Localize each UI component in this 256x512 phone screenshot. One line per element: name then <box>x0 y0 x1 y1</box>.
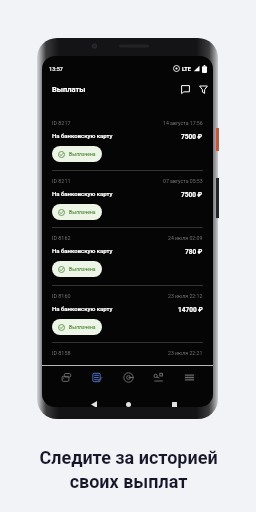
button[interactable]: Назад <box>83 393 105 407</box>
staticText: Выплачена <box>69 151 96 157</box>
button[interactable]: ID 8217 <box>42 113 213 171</box>
staticText: ID 8217 <box>52 120 71 126</box>
staticText: 23 июля 22:21 <box>168 350 203 356</box>
staticText: Выплачена <box>69 324 96 330</box>
staticText: Выплачена <box>69 209 96 215</box>
staticText: На банковскую карту <box>52 132 113 139</box>
button[interactable]: Карты <box>55 366 77 388</box>
staticText: Выплаты <box>52 85 86 94</box>
button[interactable]: ID 8158 <box>42 343 213 401</box>
staticText: ID 8158 <box>52 350 71 356</box>
staticText: На банковскую карту <box>52 190 113 197</box>
staticText: Следите за историей своих выплат <box>39 447 218 493</box>
staticText: 23 июля 22:12 <box>168 293 203 299</box>
button[interactable]: Меню <box>178 366 200 388</box>
button[interactable]: Статистика <box>147 366 169 388</box>
staticText: 7500 ₽ <box>181 191 203 199</box>
staticText: ID 8160 <box>52 293 71 299</box>
staticText: 14700 ₽ <box>178 306 203 314</box>
button[interactable]: ID 8160 <box>42 286 213 344</box>
staticText: 780 ₽ <box>185 248 203 256</box>
staticText: 07 августа 05:53 <box>163 178 203 184</box>
staticText: ID 8162 <box>52 235 71 241</box>
button[interactable]: ID 8162 <box>42 228 213 286</box>
staticText: 24 июля 02:09 <box>168 235 203 241</box>
button[interactable]: ID 8211 <box>42 171 213 229</box>
staticText: На банковскую карту <box>52 305 113 312</box>
staticText: Выплачена <box>69 266 96 272</box>
button[interactable]: Обмен <box>117 366 139 388</box>
button[interactable]: Фильтр <box>194 80 212 98</box>
button[interactable]: Сообщения <box>176 80 194 98</box>
staticText: 14 августа 17:56 <box>163 120 203 126</box>
button[interactable]: Недавние <box>163 393 185 407</box>
staticText: 13:57 <box>49 66 63 72</box>
button[interactable]: Выплаты <box>86 366 108 388</box>
staticText: 7500 ₽ <box>181 133 203 141</box>
staticText: LTE <box>182 66 191 72</box>
staticText: ID 8211 <box>52 178 71 184</box>
staticText: На банковскую карту <box>52 247 113 254</box>
button[interactable]: Домой <box>117 393 139 407</box>
